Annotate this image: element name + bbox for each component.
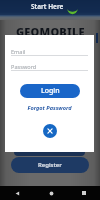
button[interactable]: Close bbox=[43, 124, 57, 138]
button[interactable]: Forgot Password bbox=[5, 103, 94, 113]
button[interactable]: Register bbox=[11, 157, 89, 173]
staticText: Email bbox=[11, 48, 26, 56]
button[interactable]: Login bbox=[20, 84, 80, 98]
button[interactable]: Recents bbox=[77, 186, 91, 200]
staticText: GEOMOBILE bbox=[16, 24, 85, 39]
button[interactable]: Back bbox=[10, 186, 24, 200]
staticText: Password bbox=[11, 63, 37, 71]
staticText: Register bbox=[38, 161, 62, 169]
staticText: Start Here bbox=[31, 2, 64, 11]
button[interactable]: Start Here bbox=[31, 2, 78, 11]
staticText: Forgot Password bbox=[27, 104, 72, 112]
staticText: Login bbox=[41, 86, 60, 96]
button[interactable]: Home bbox=[44, 186, 58, 200]
